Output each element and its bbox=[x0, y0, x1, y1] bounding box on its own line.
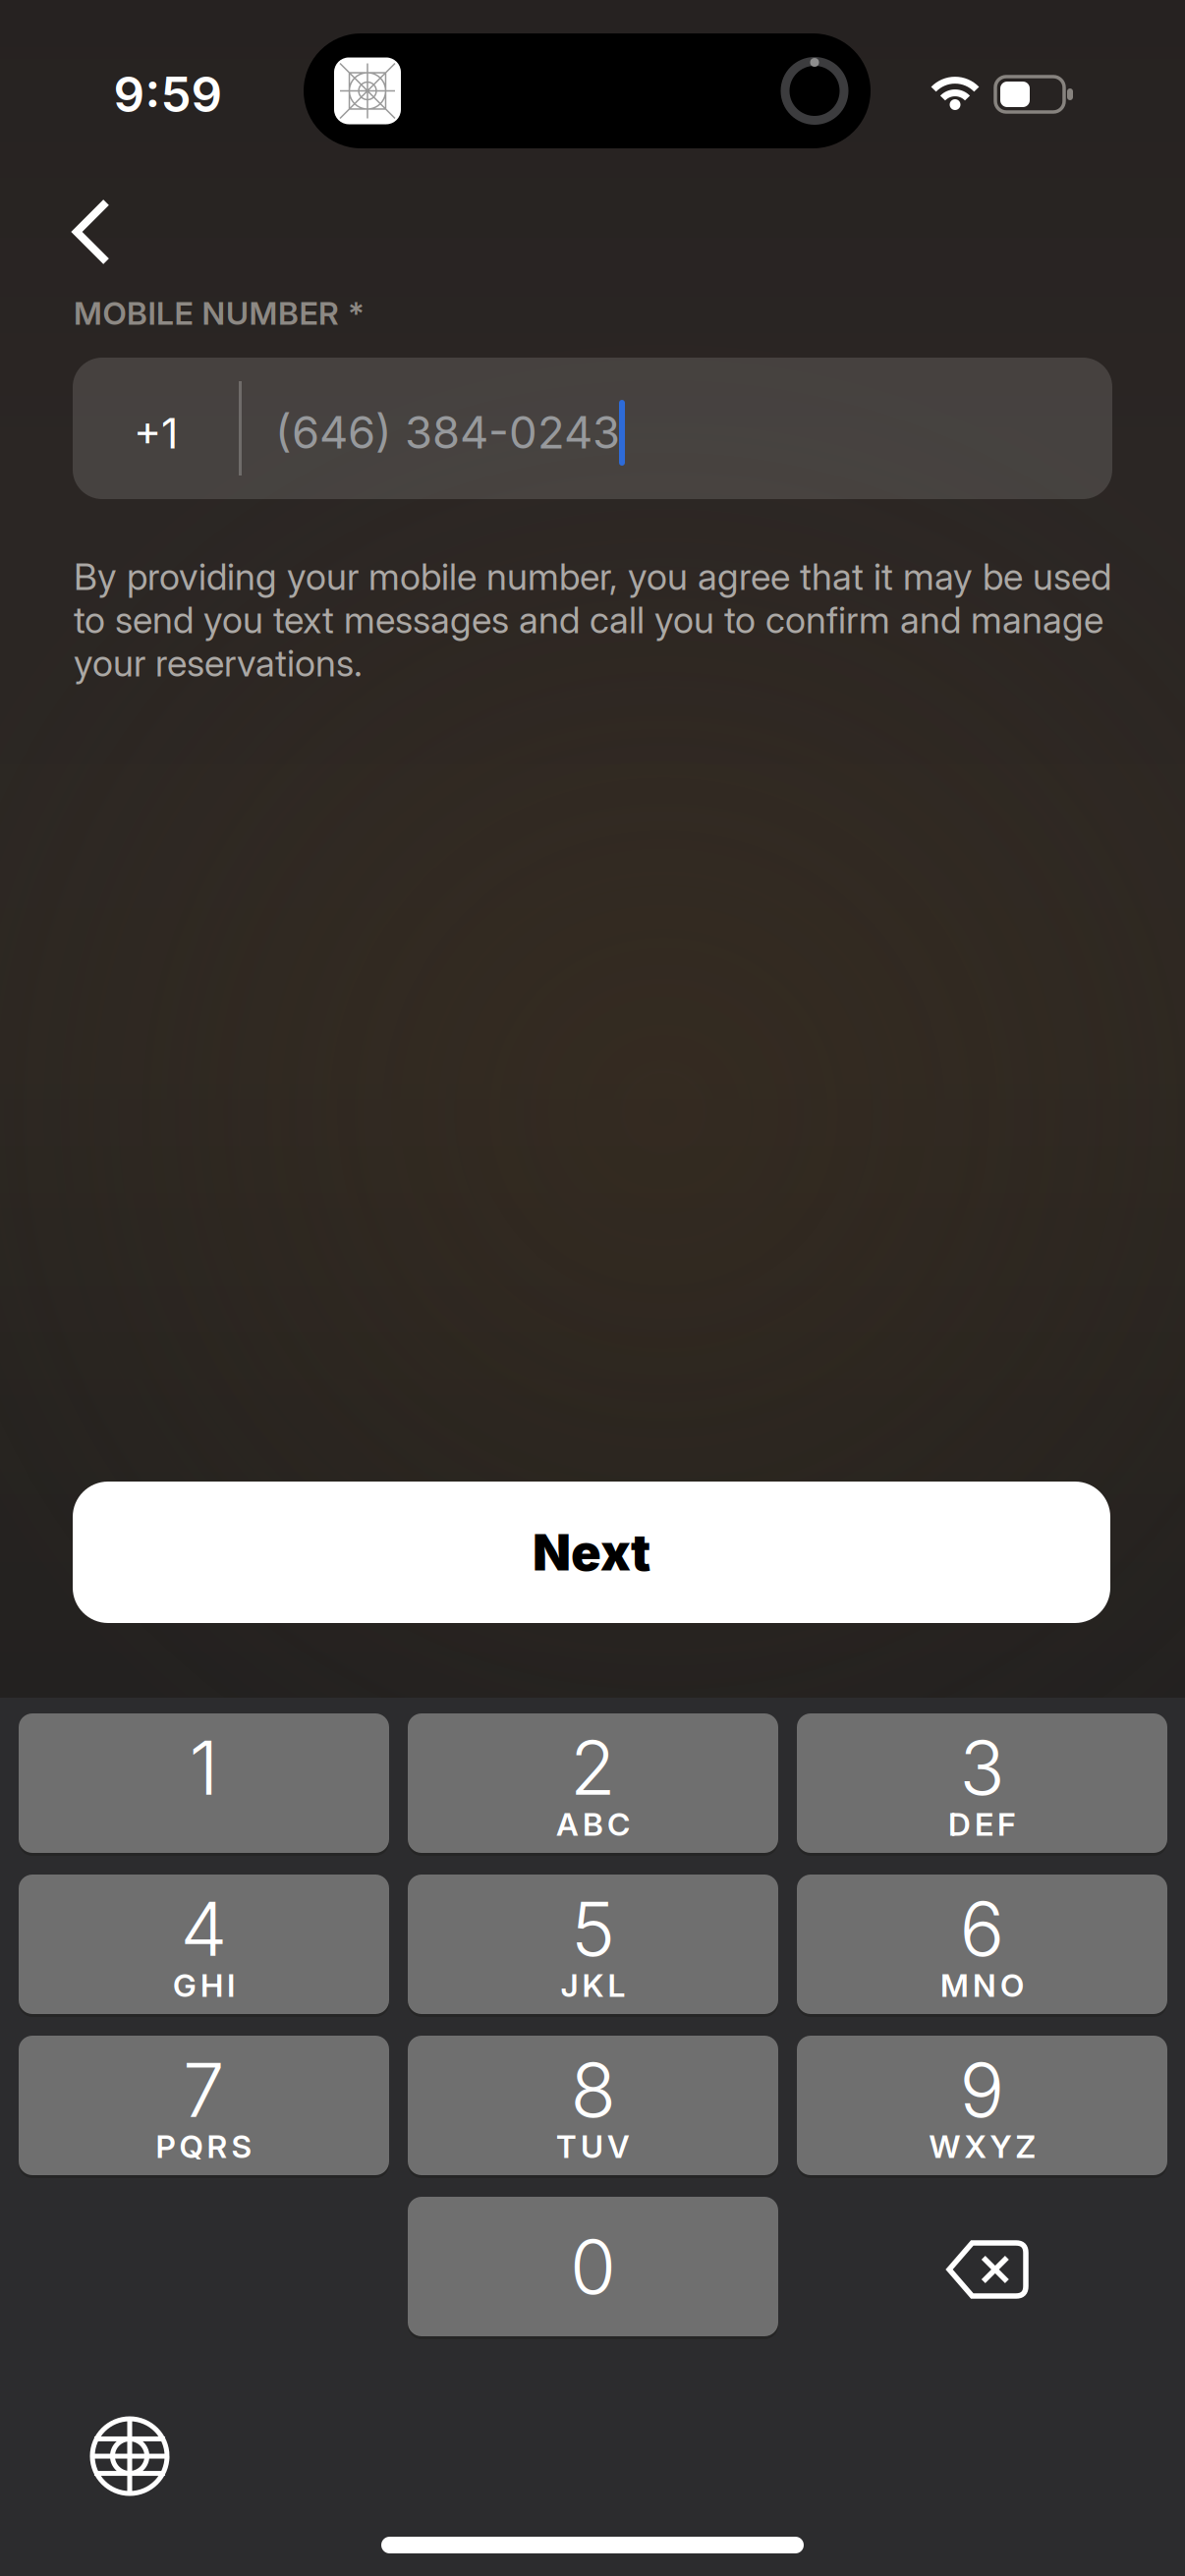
button[interactable]: 9 bbox=[797, 2036, 1167, 2178]
staticText: 7 bbox=[183, 2046, 225, 2134]
staticText: 3 bbox=[959, 1723, 1005, 1812]
staticText: your reservations. bbox=[74, 642, 363, 685]
staticText: 5 bbox=[571, 1885, 615, 1973]
button[interactable]: 6 bbox=[797, 1875, 1167, 2017]
button[interactable]: 1 bbox=[19, 1713, 389, 1856]
button[interactable]: 2 bbox=[408, 1713, 778, 1856]
button[interactable]: Next bbox=[73, 1482, 1110, 1623]
staticText: PQRS bbox=[156, 2128, 252, 2165]
staticText: 9:59 bbox=[113, 66, 223, 123]
staticText: Next bbox=[533, 1523, 650, 1582]
staticText: MOBILE NUMBER * bbox=[74, 295, 365, 332]
staticText: WXYZ bbox=[929, 2128, 1035, 2165]
staticText: to send you text messages and call you t… bbox=[74, 598, 1103, 642]
staticText: MNO bbox=[940, 1967, 1024, 2004]
staticText: 2 bbox=[570, 1723, 616, 1812]
staticText: GHI bbox=[173, 1967, 235, 2004]
staticText: 1 bbox=[189, 1723, 219, 1812]
staticText: 4 bbox=[180, 1885, 227, 1973]
button[interactable]: Back bbox=[57, 183, 126, 281]
staticText: 6 bbox=[959, 1885, 1005, 1973]
button[interactable]: 0 bbox=[408, 2197, 778, 2339]
staticText: By providing your mobile number, you agr… bbox=[74, 555, 1111, 598]
button[interactable]: Delete bbox=[920, 2212, 1055, 2327]
staticText: ABC bbox=[556, 1806, 630, 1843]
button[interactable]: Switch keyboard bbox=[68, 2395, 192, 2517]
button[interactable]: 8 bbox=[408, 2036, 778, 2178]
staticText: JKL bbox=[561, 1967, 625, 2004]
button[interactable]: 4 bbox=[19, 1875, 389, 2017]
staticText: +1 bbox=[134, 409, 178, 458]
staticText: 8 bbox=[570, 2046, 616, 2134]
staticText: DEF bbox=[948, 1806, 1016, 1843]
button[interactable]: 3 bbox=[797, 1713, 1167, 1856]
staticText: 0 bbox=[570, 2223, 616, 2311]
button[interactable]: 7 bbox=[19, 2036, 389, 2178]
staticText: TUV bbox=[556, 2128, 630, 2165]
staticText: (646) 384-0243 bbox=[275, 406, 620, 459]
staticText: 9 bbox=[959, 2046, 1005, 2134]
button[interactable]: Mobile number bbox=[73, 358, 1112, 499]
button[interactable]: 5 bbox=[408, 1875, 778, 2017]
